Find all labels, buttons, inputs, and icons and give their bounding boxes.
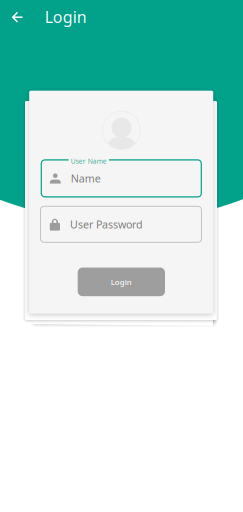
staticText: Login — [111, 276, 132, 287]
button[interactable]: Back — [4, 4, 30, 30]
staticText: User Name — [71, 156, 107, 166]
button[interactable]: Login — [78, 267, 165, 296]
staticText: User Password — [70, 217, 143, 231]
button[interactable]: User Password — [40, 206, 201, 242]
button[interactable]: Name — [41, 160, 201, 197]
staticText: Login — [45, 6, 87, 27]
staticText: Name — [71, 171, 101, 185]
